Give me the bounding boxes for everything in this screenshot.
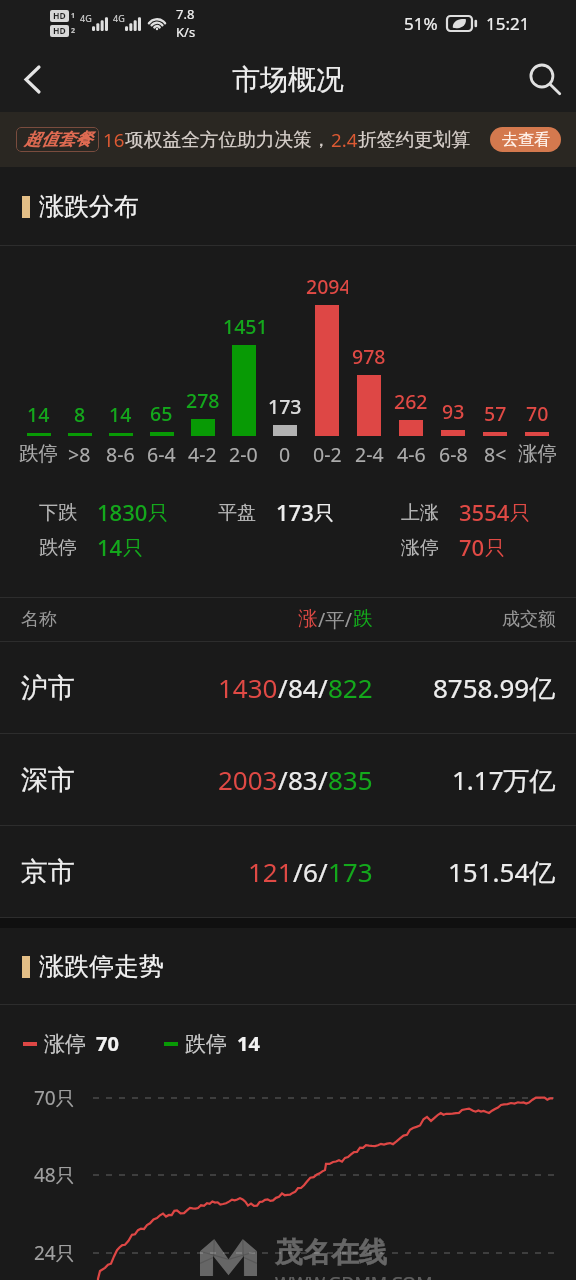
staticText: 1430 xyxy=(218,670,278,705)
staticText: 1.17万亿 xyxy=(452,762,556,798)
staticText: 7.8 xyxy=(176,5,195,23)
staticText: 只 xyxy=(314,501,334,526)
staticText: 3554 xyxy=(459,497,510,527)
staticText: 2-0 xyxy=(229,441,258,468)
staticText: 978 xyxy=(352,343,386,370)
staticText: 173 xyxy=(328,854,373,889)
staticText: 2094 xyxy=(306,273,348,300)
staticText: 262 xyxy=(394,388,428,415)
staticText: 70 xyxy=(459,532,485,562)
staticText: / xyxy=(318,670,328,705)
staticText: 0 xyxy=(279,441,291,468)
staticText: 涨跌停走势 xyxy=(39,951,164,982)
button[interactable]: Search xyxy=(512,46,576,112)
staticText: 57 xyxy=(484,400,507,427)
staticText: 4G xyxy=(113,12,125,24)
staticText: 70只 xyxy=(34,1085,75,1111)
staticText: 6-4 xyxy=(147,441,176,468)
staticText: 1 xyxy=(71,11,76,21)
button[interactable]: 去查看 xyxy=(490,127,561,152)
staticText: 173 xyxy=(276,497,314,527)
staticText: / xyxy=(278,670,288,705)
button[interactable]: 京市 xyxy=(0,826,576,917)
staticText: 0-2 xyxy=(313,441,342,468)
staticText: 涨 xyxy=(298,606,318,631)
staticText: >8 xyxy=(68,441,91,468)
staticText: 项权益全方位助力决策， xyxy=(125,128,331,152)
staticText: 24只 xyxy=(34,1240,75,1266)
staticText: 70 xyxy=(96,1030,119,1057)
staticText: 2.4 xyxy=(331,127,358,152)
staticText: 6 xyxy=(303,854,318,889)
staticText: 超值套餐 xyxy=(24,129,92,150)
staticText: 4G xyxy=(80,12,92,24)
button[interactable]: 超值套餐 xyxy=(0,112,576,167)
staticText: 8758.99亿 xyxy=(433,670,556,706)
staticText: 市场概况 xyxy=(232,62,344,97)
button[interactable]: 深市 xyxy=(0,734,576,825)
staticText: 折签约更划算 xyxy=(358,128,471,152)
staticText: 涨停 xyxy=(518,441,557,466)
staticText: 6-8 xyxy=(439,441,468,468)
staticText: HD xyxy=(53,10,66,22)
staticText: 93 xyxy=(442,398,465,425)
staticText: 名称 xyxy=(21,608,57,631)
staticText: 278 xyxy=(186,387,220,414)
staticText: 15:21 xyxy=(486,12,530,35)
staticText: WWW.GDMM.COM xyxy=(275,1271,433,1280)
staticText: 8-6 xyxy=(106,441,135,468)
staticText: 1830 xyxy=(97,497,148,527)
staticText: 跌 xyxy=(353,606,373,631)
staticText: 1451 xyxy=(223,313,264,340)
staticText: 8< xyxy=(484,441,507,468)
staticText: 只 xyxy=(123,536,143,561)
staticText: 茂名在线 xyxy=(275,1235,387,1270)
staticText: 沪市 xyxy=(21,671,75,705)
staticText: 涨跌分布 xyxy=(39,191,139,222)
staticText: 深市 xyxy=(21,763,75,797)
staticText: 822 xyxy=(328,670,373,705)
staticText: 8 xyxy=(74,401,86,428)
staticText: 涨停 xyxy=(401,536,439,560)
staticText: 2003 xyxy=(218,762,278,797)
staticText: 只 xyxy=(510,501,530,526)
staticText: 成交额 xyxy=(502,608,556,631)
staticText: 83 xyxy=(288,762,318,797)
staticText: 平盘 xyxy=(218,501,256,525)
staticText: 京市 xyxy=(21,855,75,889)
staticText: 65 xyxy=(150,400,173,427)
staticText: / xyxy=(293,854,303,889)
staticText: 只 xyxy=(485,536,505,561)
staticText: 51% xyxy=(404,12,438,35)
staticText: 上涨 xyxy=(401,501,439,525)
staticText: 14 xyxy=(27,401,50,428)
button[interactable]: Back xyxy=(0,46,64,112)
staticText: 跌停 xyxy=(39,536,77,560)
staticText: / xyxy=(278,762,288,797)
staticText: 4-6 xyxy=(397,441,426,468)
staticText: 14 xyxy=(237,1030,260,1057)
staticText: 14 xyxy=(109,401,132,428)
staticText: HD xyxy=(53,25,66,37)
staticText: 2 xyxy=(71,26,76,36)
button[interactable]: 沪市 xyxy=(0,642,576,733)
staticText: 70 xyxy=(526,400,549,427)
staticText: 16 xyxy=(103,127,125,152)
staticText: 4-2 xyxy=(188,441,217,468)
staticText: / xyxy=(318,854,328,889)
staticText: 151.54亿 xyxy=(448,854,556,890)
staticText: 48只 xyxy=(34,1162,75,1188)
staticText: 835 xyxy=(328,762,373,797)
staticText: 跌停 xyxy=(185,1031,227,1057)
staticText: 2-4 xyxy=(355,441,384,468)
staticText: 涨停 xyxy=(44,1031,86,1057)
staticText: / xyxy=(318,762,328,797)
staticText: K/s xyxy=(176,23,196,41)
staticText: 121 xyxy=(248,854,293,889)
staticText: 去查看 xyxy=(502,130,550,150)
staticText: 84 xyxy=(288,670,318,705)
staticText: /平/ xyxy=(318,606,353,633)
staticText: 只 xyxy=(148,501,168,526)
staticText: 下跌 xyxy=(39,501,77,525)
staticText: 14 xyxy=(97,532,123,562)
